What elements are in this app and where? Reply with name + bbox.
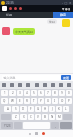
staticText: 标题: [6, 13, 12, 17]
staticText: F: [30, 107, 32, 111]
button[interactable]: 今天天气真好: [15, 28, 33, 35]
button[interactable]: 发送: [61, 75, 71, 80]
staticText: G: [37, 107, 40, 111]
button[interactable]: 6: [38, 90, 44, 96]
button[interactable]: Keyboard tool: [18, 83, 22, 87]
button[interactable]: 确定: [53, 12, 73, 18]
staticText: 确定: [60, 13, 66, 17]
button[interactable]: V: [35, 114, 41, 120]
button[interactable]: T: [31, 98, 37, 104]
staticText: M: [58, 115, 61, 119]
button[interactable]: Q: [1, 98, 8, 104]
staticText: T: [33, 99, 35, 103]
staticText: 4: [26, 91, 28, 95]
button[interactable]: A: [4, 106, 11, 112]
staticText: ?123: [4, 124, 11, 128]
staticText: - □ ✕: [62, 1, 72, 5]
button[interactable]: 你好: [49, 19, 55, 24]
button[interactable]: F: [28, 106, 34, 112]
button[interactable]: I: [52, 98, 58, 104]
staticText: 22:35: [6, 1, 14, 5]
button[interactable]: Recents: [42, 132, 45, 135]
staticText: H: [44, 107, 47, 111]
staticText: V: [37, 115, 39, 119]
button[interactable]: R: [24, 98, 30, 104]
button[interactable]: ,: [51, 122, 59, 129]
button[interactable]: Keyboard tool: [2, 83, 6, 87]
button[interactable]: 2: [9, 90, 16, 96]
button[interactable]: Keyboard tool: [51, 83, 55, 87]
button[interactable]: 4: [24, 90, 30, 96]
button[interactable]: 8: [52, 90, 58, 96]
staticText: L: [65, 107, 67, 111]
staticText: O: [61, 99, 64, 103]
button[interactable]: Keyboard tool: [43, 83, 47, 87]
button[interactable]: S: [12, 106, 19, 112]
staticText: ,: [55, 124, 56, 128]
staticText: P: [68, 99, 70, 103]
staticText: W: [11, 99, 14, 103]
staticText: 9: [61, 91, 63, 95]
button[interactable]: 1: [1, 90, 8, 96]
staticText: D: [22, 107, 25, 111]
staticText: Y: [40, 99, 42, 103]
staticText: 你好: [49, 20, 55, 24]
button[interactable]: O: [59, 98, 65, 104]
button[interactable]: M: [56, 114, 62, 120]
button[interactable]: E: [17, 98, 23, 104]
staticText: S: [15, 107, 17, 111]
button[interactable]: 输入消息: [2, 75, 60, 80]
staticText: U: [47, 99, 50, 103]
button[interactable]: 3: [17, 90, 23, 96]
button[interactable]: B: [42, 114, 48, 120]
button[interactable]: P: [66, 98, 72, 104]
staticText: 5: [33, 91, 35, 95]
button[interactable]: 7: [45, 90, 51, 96]
button[interactable]: W: [9, 98, 16, 104]
staticText: B: [44, 115, 46, 119]
button[interactable]: Keyboard tool: [26, 83, 30, 87]
staticText: C: [30, 115, 32, 119]
button[interactable]: G: [35, 106, 41, 112]
button[interactable]: U: [45, 98, 51, 104]
staticText: A: [7, 107, 9, 111]
staticText: 8: [54, 91, 56, 95]
button[interactable]: ?123: [1, 122, 13, 129]
button[interactable]: Keyboard tool: [35, 83, 39, 87]
button[interactable]: Y: [38, 98, 44, 104]
staticText: ▼ ● ▮: [62, 7, 71, 11]
button[interactable]: Keyboard tool: [59, 83, 63, 87]
staticText: X: [23, 115, 25, 119]
button[interactable]: X: [20, 114, 27, 120]
staticText: 2: [12, 91, 14, 95]
button[interactable]: App icon: [2, 6, 7, 11]
staticText: 0: [68, 91, 70, 95]
staticText: 7: [47, 91, 49, 95]
button[interactable]: N: [49, 114, 55, 120]
staticText: J: [52, 107, 53, 111]
button[interactable]: H: [42, 106, 48, 112]
button[interactable]: 9: [59, 90, 65, 96]
staticText: R: [26, 99, 28, 103]
button[interactable]: K: [56, 106, 62, 112]
button[interactable]: Keyboard tool: [10, 83, 14, 87]
button[interactable]: Z: [12, 114, 19, 120]
button[interactable]: 5: [31, 90, 37, 96]
button[interactable]: L: [63, 106, 69, 112]
button[interactable]: D: [20, 106, 27, 112]
button[interactable]: Keyboard tool: [67, 83, 71, 87]
button[interactable]: J: [49, 106, 55, 112]
staticText: 输入消息: [2, 76, 16, 80]
button[interactable]: C: [28, 114, 34, 120]
staticText: E: [19, 99, 21, 103]
staticText: 今天天气真好: [15, 30, 33, 34]
button[interactable]: 0: [66, 90, 72, 96]
staticText: Q: [3, 99, 6, 103]
